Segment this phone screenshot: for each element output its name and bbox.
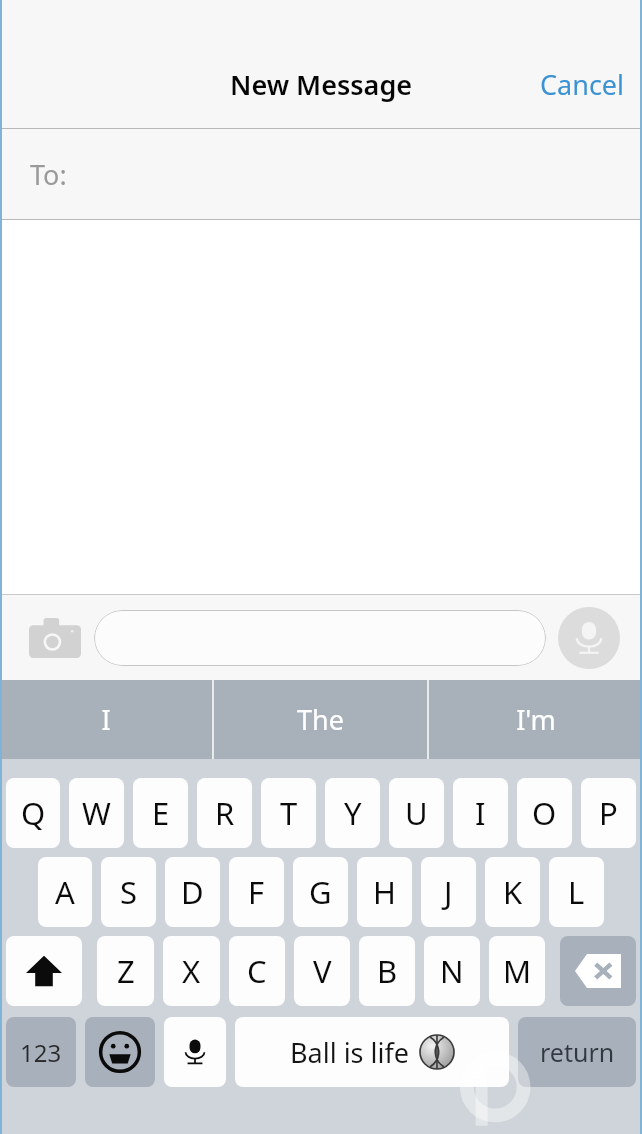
staticText: Y xyxy=(344,792,362,834)
button[interactable]: Z xyxy=(97,936,154,1006)
button[interactable]: X xyxy=(163,936,220,1006)
staticText: S xyxy=(120,871,138,913)
button[interactable]: T xyxy=(261,778,316,848)
button[interactable]: Emoji xyxy=(85,1017,155,1087)
staticText: L xyxy=(568,871,585,913)
button[interactable]: Voice input xyxy=(164,1017,226,1087)
button[interactable]: Y xyxy=(325,778,380,848)
button[interactable]: Shift xyxy=(6,936,82,1006)
button[interactable]: U xyxy=(389,778,444,848)
staticText: U xyxy=(405,792,428,834)
button[interactable]: D xyxy=(165,857,220,927)
button[interactable]: The xyxy=(214,680,427,759)
button[interactable]: V xyxy=(294,936,350,1006)
button[interactable]: S xyxy=(101,857,156,927)
button[interactable]: K xyxy=(485,857,540,927)
button[interactable]: W xyxy=(69,778,124,848)
button[interactable]: Q xyxy=(6,778,60,848)
staticText: I'm xyxy=(516,701,556,738)
staticText: The xyxy=(297,701,344,738)
staticText: return xyxy=(540,1035,615,1069)
staticText: I xyxy=(101,701,111,738)
button[interactable]: I xyxy=(0,680,212,759)
button[interactable]: J xyxy=(421,857,476,927)
button[interactable]: F xyxy=(229,857,284,927)
staticText: To: xyxy=(30,156,67,193)
button[interactable]: G xyxy=(293,857,348,927)
staticText: C xyxy=(247,950,267,992)
button[interactable]: B xyxy=(359,936,415,1006)
button[interactable]: I xyxy=(453,778,508,848)
button[interactable] xyxy=(94,610,546,666)
staticText: G xyxy=(309,871,332,913)
staticText: 123 xyxy=(20,1036,62,1069)
button[interactable]: P xyxy=(581,778,636,848)
button[interactable]: Dictation xyxy=(556,605,622,671)
button[interactable]: Ball is life xyxy=(235,1017,509,1087)
button[interactable]: L xyxy=(549,857,604,927)
button[interactable]: O xyxy=(517,778,572,848)
staticText: R xyxy=(215,792,235,834)
staticText: K xyxy=(503,871,523,913)
staticText: New Message xyxy=(230,66,413,103)
staticText: A xyxy=(55,871,75,913)
staticText: I xyxy=(475,792,486,834)
staticText: T xyxy=(280,792,298,834)
button[interactable]: M xyxy=(489,936,545,1006)
button[interactable]: return xyxy=(518,1017,636,1087)
button[interactable]: Cancel xyxy=(523,58,642,111)
staticText: O xyxy=(532,792,557,834)
staticText: H xyxy=(373,871,396,913)
button[interactable]: To: xyxy=(0,129,642,219)
staticText: F xyxy=(248,871,265,913)
button[interactable]: 123 xyxy=(6,1017,76,1087)
button[interactable]: R xyxy=(197,778,252,848)
button[interactable]: C xyxy=(229,936,285,1006)
button[interactable]: I'm xyxy=(429,680,642,759)
staticText: Ball is life xyxy=(290,1034,410,1071)
button[interactable]: E xyxy=(133,778,188,848)
staticText: E xyxy=(152,792,170,834)
staticText: B xyxy=(377,950,398,992)
staticText: M xyxy=(503,950,532,992)
staticText: Cancel xyxy=(540,66,625,103)
staticText: D xyxy=(181,871,204,913)
staticText: Q xyxy=(21,792,46,834)
button[interactable]: Camera xyxy=(22,605,88,671)
staticText: J xyxy=(444,871,453,913)
button[interactable]: Backspace xyxy=(560,936,636,1006)
staticText: Z xyxy=(117,950,135,992)
button[interactable]: A xyxy=(38,857,92,927)
staticText: W xyxy=(82,792,111,834)
button[interactable]: N xyxy=(424,936,480,1006)
button[interactable]: H xyxy=(357,857,412,927)
staticText: V xyxy=(313,950,332,992)
staticText: X xyxy=(182,950,201,992)
staticText: P xyxy=(599,792,618,834)
staticText: N xyxy=(440,950,464,992)
